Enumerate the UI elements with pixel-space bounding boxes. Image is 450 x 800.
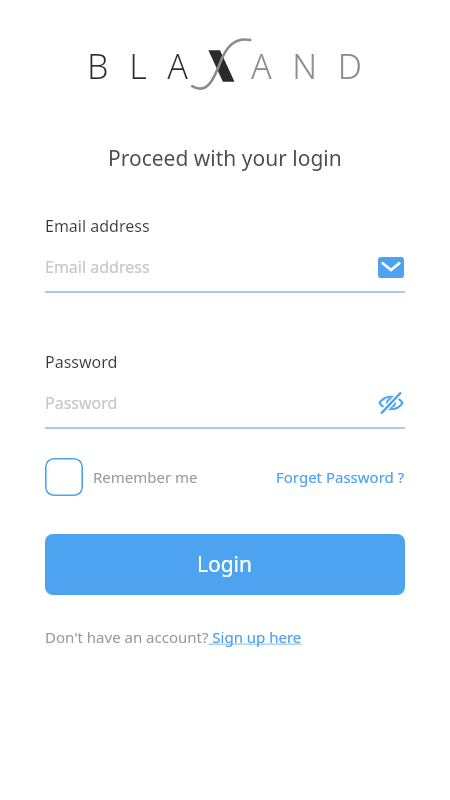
staticText: Email address	[45, 215, 150, 237]
button[interactable]: Remember me	[45, 458, 198, 496]
staticText: Password	[45, 392, 118, 414]
staticText: Email address	[45, 256, 150, 278]
button[interactable]: Forget Password ?	[276, 467, 405, 487]
button[interactable]: Login	[45, 534, 405, 595]
staticText: Forget Password ?	[276, 467, 405, 487]
staticText: Remember me	[93, 467, 198, 487]
staticText: Proceed with your login	[108, 144, 342, 173]
staticText: A N D	[251, 43, 363, 89]
button[interactable]: Email	[377, 253, 405, 281]
staticText: Login	[197, 550, 253, 579]
staticText: Don't have an account? Sign up here	[45, 627, 302, 647]
button[interactable]: Don't have an account? Sign up here	[45, 627, 302, 647]
staticText: B L A	[87, 43, 189, 89]
staticText: Password	[45, 351, 118, 373]
button[interactable]: Show password	[377, 389, 405, 417]
